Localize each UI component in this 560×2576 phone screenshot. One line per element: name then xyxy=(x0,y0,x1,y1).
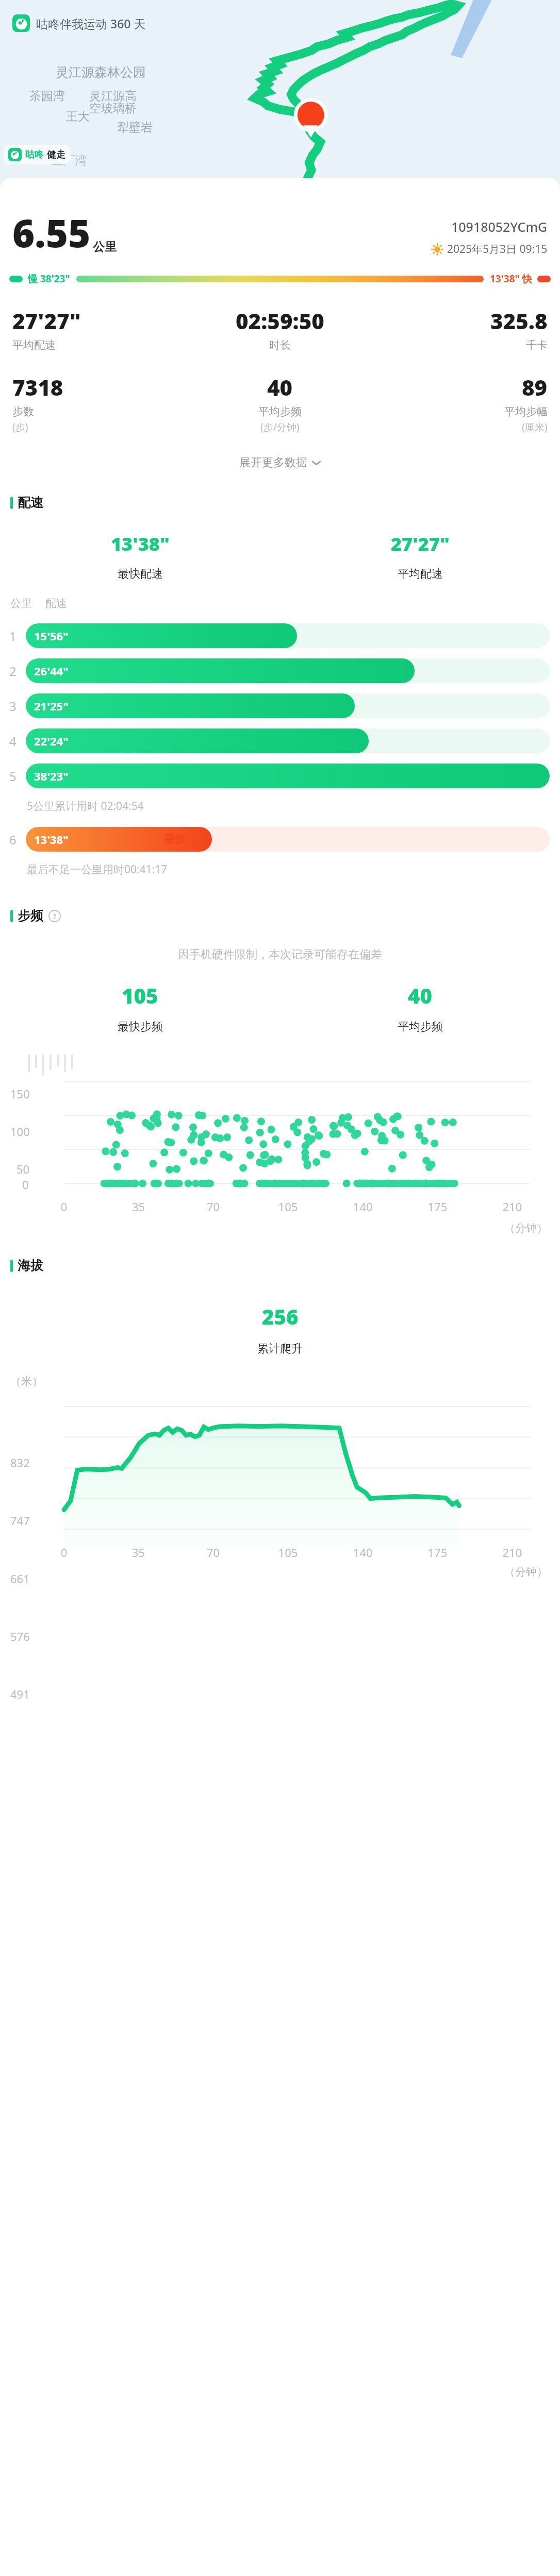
staticText: 犁壁岩 xyxy=(117,120,153,135)
button[interactable]: 4 xyxy=(0,725,560,756)
staticText: 公里 xyxy=(93,240,117,255)
staticText: 21'25" xyxy=(34,698,69,714)
staticText: 3 xyxy=(9,698,17,715)
staticText: 平均步频 xyxy=(398,1020,443,1034)
staticText: 105 xyxy=(251,1199,325,1214)
staticText: 5 xyxy=(9,768,17,785)
staticText: 6 xyxy=(9,831,17,848)
staticText: 13'38" xyxy=(34,832,69,847)
staticText: 13'38" 快 xyxy=(490,272,532,285)
staticText: 平均配速 xyxy=(398,567,443,581)
staticText: 累计爬升 xyxy=(257,1342,303,1356)
button[interactable]: 5 xyxy=(0,760,560,791)
staticText: ? xyxy=(53,911,57,921)
staticText: 10918052YCmG xyxy=(451,218,548,235)
staticText: 0 xyxy=(27,1199,101,1214)
staticText: 175 xyxy=(400,1545,475,1560)
staticText: 13'38" xyxy=(111,531,170,556)
staticText: 35 xyxy=(101,1545,176,1560)
staticText: 175 xyxy=(400,1199,475,1214)
staticText: 210 xyxy=(475,1545,550,1560)
staticText: 因手机硬件限制，本次记录可能存在偏差 xyxy=(0,947,560,962)
staticText: 咕咚 xyxy=(25,149,44,161)
staticText: 亘厂湾 xyxy=(52,153,87,168)
staticText: 832 xyxy=(10,1455,30,1470)
staticText: (步) xyxy=(12,420,28,434)
staticText: 35 xyxy=(101,1199,176,1214)
staticText: 茶园湾 xyxy=(29,89,65,104)
button[interactable]: 3 xyxy=(0,690,560,721)
staticText: 2025年5月3日 09:15 xyxy=(447,242,548,257)
staticText: 平均步幅 xyxy=(504,405,548,418)
staticText: （米） xyxy=(10,1375,43,1388)
staticText: 747 xyxy=(10,1513,30,1528)
staticText: 6.55 xyxy=(12,207,91,259)
staticText: 千卡 xyxy=(526,338,548,352)
staticText: 576 xyxy=(10,1629,30,1644)
staticText: 咕咚伴我运动 360 天 xyxy=(36,15,146,31)
button[interactable]: 2 xyxy=(0,655,560,686)
staticText: 海拔 xyxy=(18,1258,43,1274)
staticText: 时长 xyxy=(269,338,291,352)
staticText: 325.8 xyxy=(490,306,548,335)
button[interactable]: 展开更多数据 xyxy=(0,455,560,470)
staticText: 7318 xyxy=(12,372,63,402)
staticText: 27'27" xyxy=(391,531,450,556)
staticText: 5公里累计用时 02:04:54 xyxy=(27,799,144,814)
staticText: 1 xyxy=(9,628,17,645)
staticText: （分钟） xyxy=(0,1222,548,1235)
staticText: 150 xyxy=(10,1086,30,1101)
staticText: 40 xyxy=(408,981,432,1009)
staticText: 平均配速 xyxy=(12,338,56,352)
staticText: 配速 xyxy=(45,597,67,610)
staticText: (步/分钟) xyxy=(260,420,300,434)
staticText: 0 xyxy=(22,1177,29,1192)
staticText: （分钟） xyxy=(0,1565,548,1579)
button[interactable]: 1 xyxy=(0,620,560,651)
staticText: 公里 xyxy=(10,597,32,610)
staticText: 灵江源森林公园 xyxy=(56,64,146,80)
staticText: 210 xyxy=(475,1199,550,1214)
staticText: 02:59:50 xyxy=(236,306,324,335)
staticText: 平均步频 xyxy=(258,405,302,418)
staticText: 王大 xyxy=(66,109,90,124)
staticText: 0 xyxy=(27,1545,101,1560)
staticText: 105 xyxy=(122,981,158,1009)
staticText: 最快步频 xyxy=(118,1020,163,1034)
staticText: 491 xyxy=(10,1686,30,1702)
staticText: 最快 xyxy=(164,833,186,846)
staticText: 4 xyxy=(9,733,17,750)
staticText: 2 xyxy=(9,663,17,680)
staticText: 70 xyxy=(176,1545,251,1560)
staticText: 22'24" xyxy=(34,733,69,749)
staticText: 健走 xyxy=(47,149,65,161)
staticText: 展开更多数据 xyxy=(239,455,307,470)
staticText: 26'44" xyxy=(34,663,69,679)
staticText: 70 xyxy=(176,1199,251,1214)
staticText: 100 xyxy=(10,1124,30,1139)
staticText: 661 xyxy=(10,1571,30,1586)
button[interactable]: 6 xyxy=(0,824,560,855)
staticText: 空玻璃桥 xyxy=(89,101,137,116)
staticText: 最后不足一公里用时00:41:17 xyxy=(27,862,168,877)
staticText: 140 xyxy=(325,1545,400,1560)
staticText: 40 xyxy=(267,372,293,402)
staticText: 最快配速 xyxy=(118,567,163,581)
staticText: 慢 38'23" xyxy=(28,272,70,285)
staticText: 27'27" xyxy=(12,306,81,335)
staticText: 步频 xyxy=(18,908,43,924)
staticText: (厘米) xyxy=(522,420,548,434)
staticText: 配速 xyxy=(18,495,43,511)
staticText: 50 xyxy=(17,1161,30,1177)
staticText: 38'23" xyxy=(34,768,69,784)
staticText: 15'56" xyxy=(34,628,69,643)
staticText: 256 xyxy=(262,1302,299,1330)
staticText: 灵江源高 xyxy=(89,89,137,104)
staticText: 105 xyxy=(251,1545,325,1560)
button[interactable]: 帮助 xyxy=(48,910,61,922)
staticText: 89 xyxy=(522,372,548,402)
staticText: 步数 xyxy=(12,405,34,418)
staticText: 140 xyxy=(325,1199,400,1214)
